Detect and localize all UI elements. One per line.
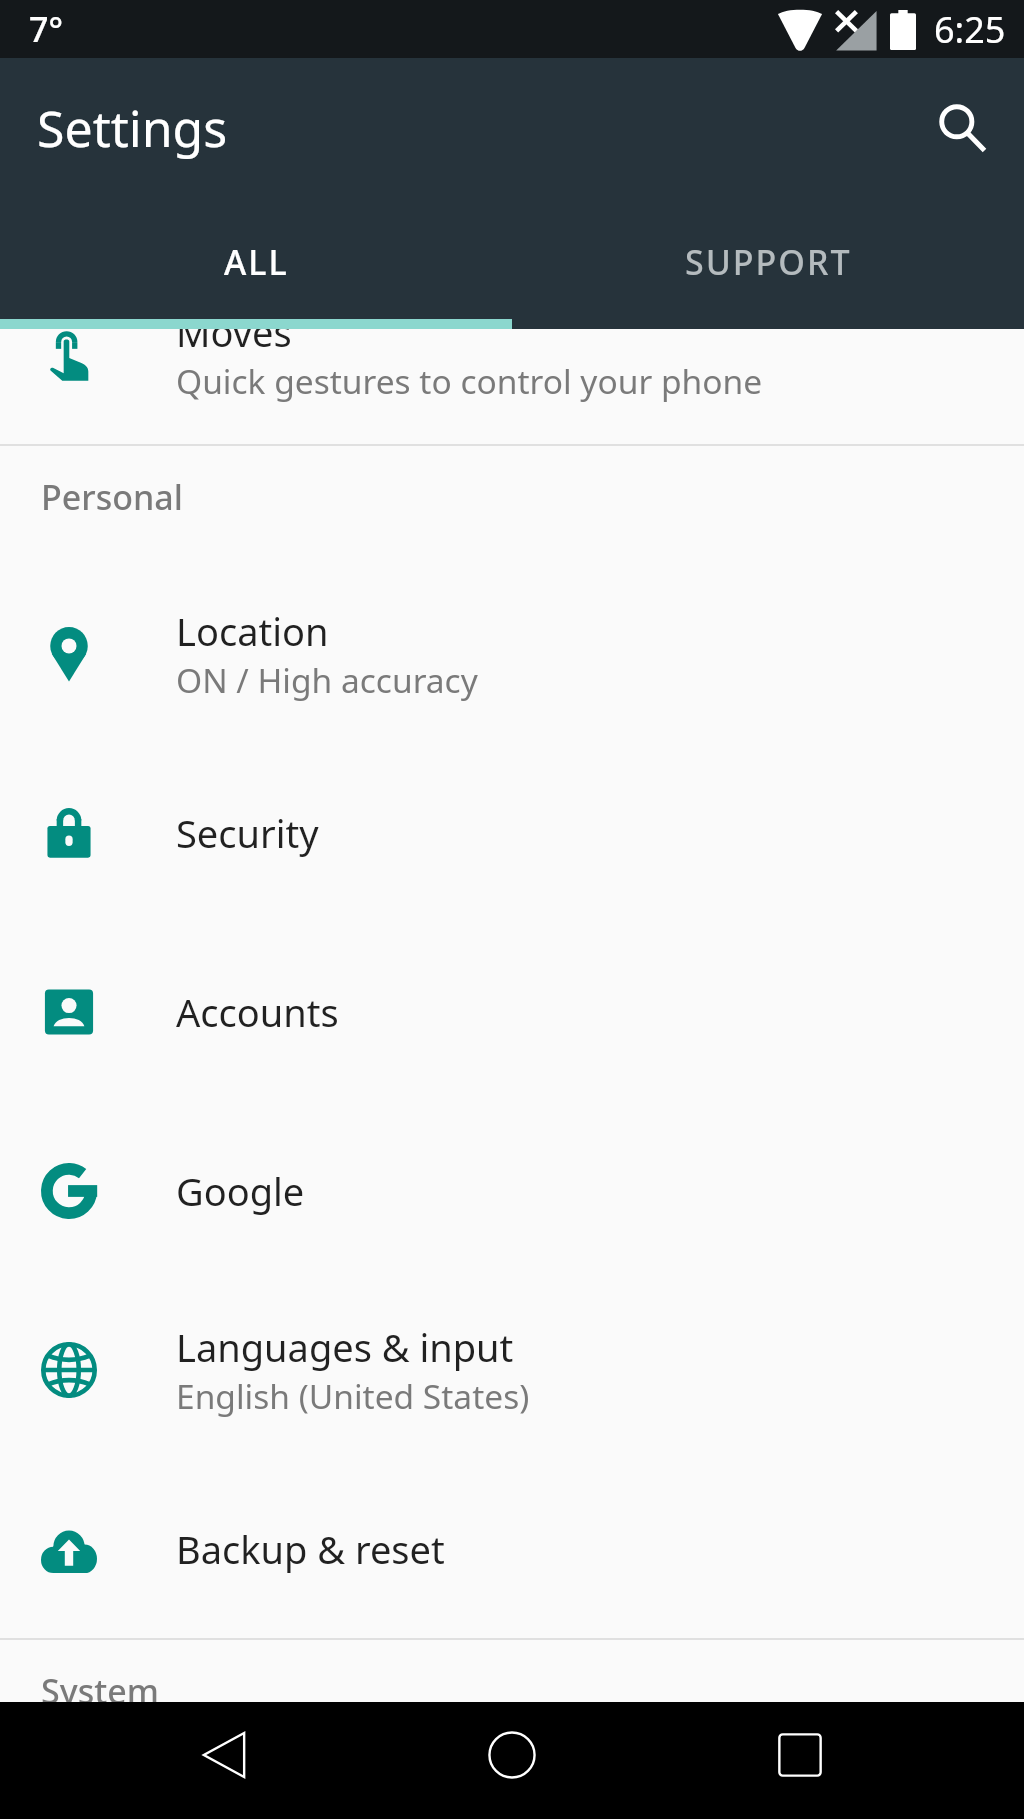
button[interactable]: Backup & reset bbox=[0, 1459, 1024, 1638]
staticText: Moves bbox=[176, 306, 292, 358]
staticText: SUPPORT bbox=[685, 239, 852, 285]
button[interactable]: Location bbox=[0, 564, 1024, 743]
staticText: Security bbox=[176, 807, 319, 859]
staticText: Settings bbox=[37, 94, 228, 162]
button[interactable]: ALL bbox=[0, 210, 512, 319]
staticText: Personal bbox=[41, 474, 183, 520]
staticText: ALL bbox=[224, 239, 289, 285]
button[interactable]: Recent apps bbox=[720, 1696, 880, 1813]
staticText: ON / High accuracy bbox=[176, 657, 478, 703]
staticText: Quick gestures to control your phone bbox=[176, 358, 763, 404]
staticText: Google bbox=[176, 1165, 305, 1217]
staticText: 7° bbox=[29, 6, 63, 52]
staticText: English (United States) bbox=[176, 1373, 530, 1419]
button[interactable]: Accounts bbox=[0, 922, 1024, 1101]
button[interactable]: Back bbox=[144, 1696, 304, 1813]
staticText: System bbox=[41, 1668, 159, 1714]
staticText: Accounts bbox=[176, 986, 339, 1038]
button[interactable]: Security bbox=[0, 743, 1024, 922]
staticText: Languages & input bbox=[176, 1321, 514, 1373]
button[interactable]: Moves bbox=[0, 265, 1024, 444]
staticText: Location bbox=[176, 605, 329, 657]
button[interactable]: Home bbox=[432, 1696, 592, 1813]
button[interactable]: Search bbox=[914, 80, 1010, 176]
staticText: Backup & reset bbox=[176, 1523, 445, 1575]
button[interactable]: Google bbox=[0, 1101, 1024, 1280]
button[interactable]: Languages & input bbox=[0, 1280, 1024, 1459]
button[interactable]: SUPPORT bbox=[512, 210, 1024, 319]
staticText: 6:25 bbox=[934, 5, 1006, 54]
